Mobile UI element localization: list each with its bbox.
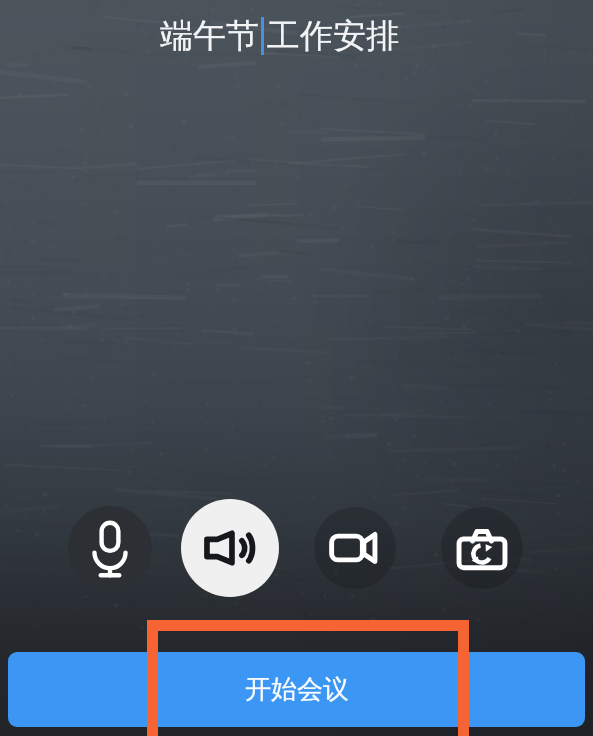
staticText: 工作安排 [267, 15, 399, 57]
button[interactable]: 开始会议 [8, 652, 585, 727]
staticText: 开始会议 [245, 673, 349, 706]
button[interactable]: 端午节 [160, 12, 428, 60]
button[interactable]: Speaker [181, 499, 279, 597]
button[interactable]: Switch camera [441, 507, 523, 589]
staticText: 端午节 [160, 15, 259, 57]
button[interactable]: Toggle video [314, 507, 396, 589]
button[interactable]: Mute microphone [68, 506, 152, 590]
